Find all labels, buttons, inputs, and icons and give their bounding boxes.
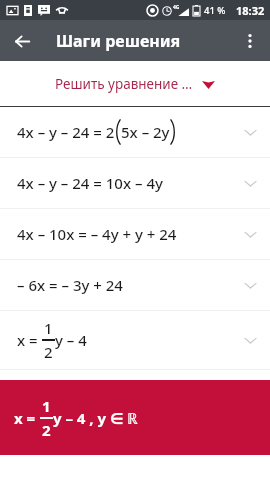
staticText: – 6x = – 3y + 24 xyxy=(17,275,123,295)
button[interactable]: 4x – 10x = – 4y + y + 24 xyxy=(0,209,270,259)
button[interactable]: 4x – y – 24 = 2 xyxy=(0,107,270,157)
button[interactable]: – 6x = – 3y + 24 xyxy=(0,260,270,310)
staticText: 4x – y – 24 = 2 xyxy=(17,122,115,142)
button[interactable]: 4x – y – 24 = 10x – 4y xyxy=(0,158,270,208)
staticText: 2 xyxy=(44,342,53,362)
staticText: Решить уравнение … xyxy=(55,75,193,93)
staticText: 5x – 2y xyxy=(121,122,170,142)
staticText: y – 4 xyxy=(55,330,87,350)
staticText: 18:32 xyxy=(236,3,265,18)
staticText: x = xyxy=(14,408,40,428)
staticText: 41 % xyxy=(204,4,226,17)
staticText: 4x – 10x = – 4y + y + 24 xyxy=(17,224,177,244)
staticText: 1 xyxy=(44,318,53,338)
button[interactable]: x = xyxy=(0,380,270,455)
staticText: 1 xyxy=(42,396,51,416)
staticText: Шаги решения xyxy=(56,30,181,52)
staticText: y – 4 , y ∈ ℝ xyxy=(53,408,139,428)
staticText: 4G xyxy=(173,4,180,11)
button[interactable]: Решить уравнение … xyxy=(0,61,270,106)
staticText: 4x – y – 24 = 10x – 4y xyxy=(17,173,163,193)
button[interactable]: More options xyxy=(234,25,266,57)
button[interactable]: Back xyxy=(6,25,38,57)
staticText: x = xyxy=(17,330,42,350)
button[interactable]: x = xyxy=(0,311,270,369)
staticText: 2 xyxy=(42,420,51,440)
